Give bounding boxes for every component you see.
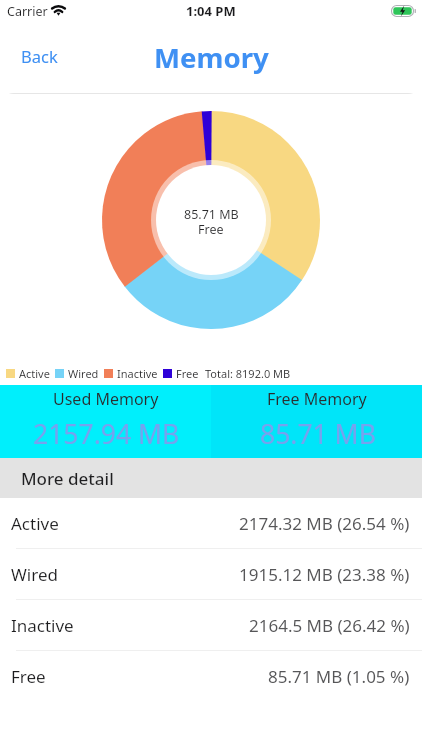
button[interactable]: Free [0, 651, 422, 702]
staticText: Memory [154, 38, 269, 76]
staticText: 85.71 MB [260, 416, 376, 452]
staticText: Inactive [117, 366, 158, 381]
staticText: 85.71 MB (1.05 %) [268, 665, 410, 688]
staticText: 2174.32 MB (26.54 %) [239, 512, 410, 535]
staticText: Wired [11, 563, 58, 586]
staticText: More detail [21, 467, 114, 490]
staticText: Free Memory [267, 388, 367, 410]
button[interactable]: Active [0, 498, 422, 549]
staticText: Free [11, 665, 46, 688]
staticText: 2157.94 MB [33, 416, 180, 452]
button[interactable]: Used Memory [0, 385, 211, 458]
staticText: Total: 8192.0 MB [205, 366, 291, 381]
staticText: 1915.12 MB (23.38 %) [239, 563, 410, 586]
staticText: Carrier [7, 3, 48, 20]
button[interactable]: Free Memory [211, 385, 422, 458]
staticText: Free [176, 366, 199, 381]
staticText: Free [198, 221, 224, 238]
staticText: Used Memory [53, 388, 159, 410]
staticText: 1:04 PM [186, 2, 236, 20]
staticText: Back [21, 45, 58, 67]
staticText: Active [19, 366, 50, 381]
staticText: 85.71 MB [184, 206, 239, 223]
button[interactable]: Back [13, 37, 66, 75]
staticText: Active [11, 512, 59, 535]
button[interactable]: Wired [0, 549, 422, 600]
button[interactable]: Inactive [0, 600, 422, 651]
staticText: 2164.5 MB (26.42 %) [249, 614, 410, 637]
other: Battery charging [391, 5, 416, 17]
staticText: Inactive [11, 614, 74, 637]
staticText: Wired [68, 366, 99, 381]
